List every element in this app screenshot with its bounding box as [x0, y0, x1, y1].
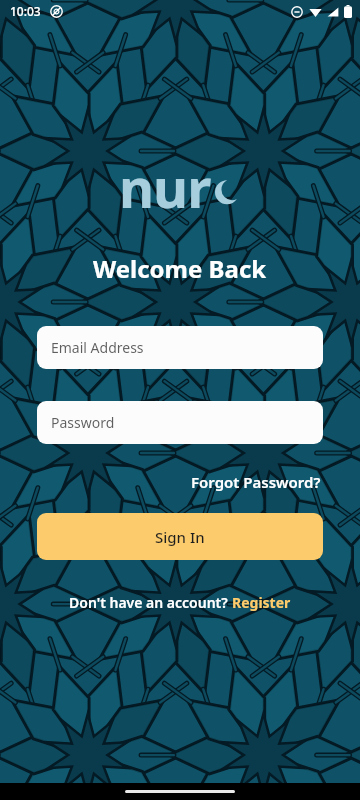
button[interactable]: Register: [232, 593, 291, 612]
staticText: nur: [119, 150, 211, 222]
staticText: Register: [232, 593, 291, 612]
button[interactable]: Password: [37, 401, 323, 444]
staticText: 10:03: [10, 3, 41, 19]
button[interactable]: Email Address: [37, 326, 323, 369]
button[interactable]: Sign In: [37, 513, 323, 560]
staticText: Don't have an account?: [69, 593, 232, 612]
staticText: Email Address: [51, 338, 144, 357]
staticText: Forgot Password?: [191, 472, 321, 492]
staticText: Password: [51, 413, 115, 432]
button[interactable]: Forgot Password?: [189, 470, 323, 494]
staticText: Sign In: [155, 527, 205, 547]
staticText: Welcome Back: [93, 252, 267, 285]
